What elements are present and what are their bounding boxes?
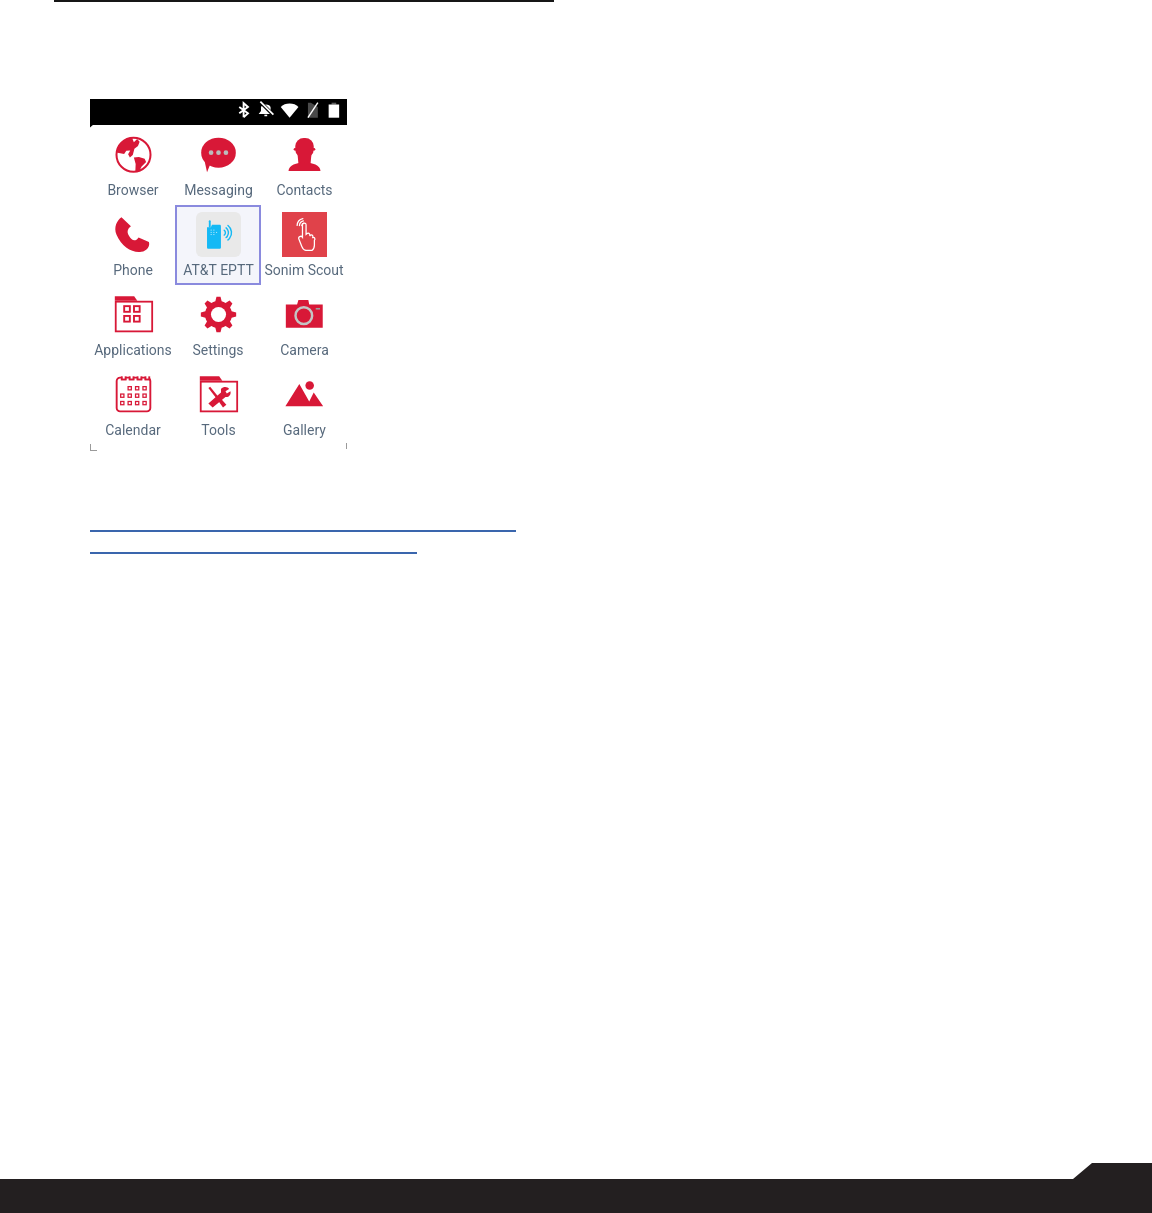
button[interactable]: Applications <box>90 285 175 365</box>
staticText: Phone <box>113 262 153 278</box>
staticText: Settings <box>192 342 244 358</box>
staticText: Calendar <box>105 422 161 438</box>
button[interactable]: Phone <box>90 205 175 285</box>
staticText: Camera <box>280 342 329 358</box>
staticText: Messaging <box>184 182 253 198</box>
button[interactable]: Camera <box>261 285 347 365</box>
button[interactable]: Sonim Scout <box>261 205 347 285</box>
button[interactable]: Messaging <box>175 125 261 205</box>
staticText: Contacts <box>276 182 333 198</box>
staticText: Tools <box>201 422 236 438</box>
button[interactable]: Tools <box>175 365 261 445</box>
staticText: Sonim Scout <box>264 262 344 278</box>
staticText: Browser <box>107 182 159 198</box>
button[interactable]: Calendar <box>90 365 175 445</box>
staticText: Gallery <box>283 422 326 438</box>
button[interactable]: Browser <box>90 125 175 205</box>
button[interactable]: Gallery <box>261 365 347 445</box>
staticText: AT&T EPTT <box>183 262 254 278</box>
button[interactable]: Settings <box>175 285 261 365</box>
button[interactable]: Contacts <box>261 125 347 205</box>
staticText: Applications <box>94 342 172 358</box>
button[interactable]: AT&T EPTT <box>175 205 261 285</box>
